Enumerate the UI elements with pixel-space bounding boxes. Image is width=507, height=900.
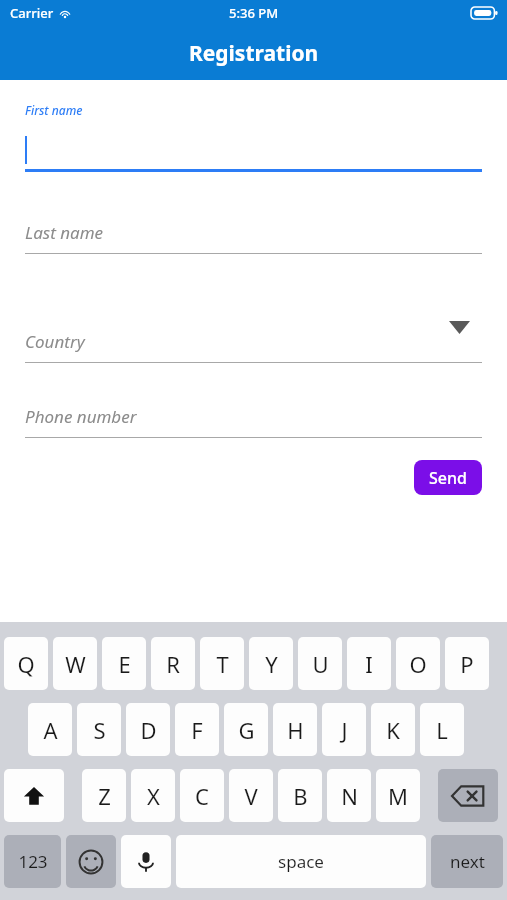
button[interactable]: N bbox=[327, 769, 371, 822]
staticText: F bbox=[191, 715, 203, 745]
staticText: Last name bbox=[25, 221, 104, 244]
button[interactable]: Voice input bbox=[121, 835, 171, 888]
button[interactable]: L bbox=[420, 703, 464, 756]
staticText: J bbox=[341, 715, 348, 745]
button[interactable]: Backspace bbox=[438, 769, 498, 822]
staticText: I bbox=[365, 649, 373, 679]
button[interactable]: Phone number bbox=[25, 394, 482, 438]
staticText: M bbox=[388, 781, 408, 811]
button[interactable]: O bbox=[396, 637, 440, 690]
button[interactable]: H bbox=[273, 703, 317, 756]
button[interactable]: X bbox=[131, 769, 175, 822]
button[interactable]: Emoji bbox=[66, 835, 116, 888]
staticText: Carrier bbox=[10, 4, 54, 22]
button[interactable]: T bbox=[200, 637, 244, 690]
button[interactable]: G bbox=[224, 703, 268, 756]
button[interactable]: Q bbox=[4, 637, 48, 690]
button[interactable]: First name bbox=[25, 102, 83, 118]
staticText: U bbox=[312, 649, 329, 679]
staticText: space bbox=[278, 850, 324, 873]
button[interactable]: E bbox=[102, 637, 146, 690]
button[interactable]: J bbox=[322, 703, 366, 756]
staticText: W bbox=[65, 649, 86, 679]
button[interactable]: W bbox=[53, 637, 97, 690]
button[interactable]: B bbox=[278, 769, 322, 822]
staticText: N bbox=[341, 781, 358, 811]
button[interactable]: Send bbox=[414, 460, 482, 495]
button[interactable]: F bbox=[175, 703, 219, 756]
button[interactable]: S bbox=[77, 703, 121, 756]
staticText: Phone number bbox=[25, 405, 137, 428]
button[interactable]: Y bbox=[249, 637, 293, 690]
staticText: K bbox=[386, 715, 400, 745]
staticText: Send bbox=[429, 467, 467, 489]
staticText: L bbox=[436, 715, 448, 745]
staticText: O bbox=[409, 649, 427, 679]
button[interactable]: Last name bbox=[25, 210, 482, 254]
staticText: Y bbox=[265, 649, 278, 679]
button[interactable] bbox=[25, 128, 482, 172]
button[interactable]: M bbox=[376, 769, 420, 822]
button[interactable]: Shift bbox=[4, 769, 64, 822]
staticText: Q bbox=[17, 649, 35, 679]
button[interactable]: P bbox=[445, 637, 489, 690]
staticText: Z bbox=[98, 781, 111, 811]
button[interactable]: A bbox=[28, 703, 72, 756]
staticText: D bbox=[140, 715, 157, 745]
button[interactable]: space bbox=[176, 835, 426, 888]
button[interactable]: Country bbox=[25, 319, 482, 363]
staticText: G bbox=[238, 715, 255, 745]
staticText: X bbox=[147, 781, 160, 811]
staticText: S bbox=[93, 715, 106, 745]
staticText: 5:36 PM bbox=[229, 4, 279, 22]
staticText: next bbox=[450, 850, 485, 873]
button[interactable]: K bbox=[371, 703, 415, 756]
staticText: Registration bbox=[189, 39, 319, 68]
staticText: C bbox=[195, 781, 209, 811]
staticText: A bbox=[43, 715, 58, 745]
staticText: P bbox=[460, 649, 474, 679]
button[interactable]: I bbox=[347, 637, 391, 690]
staticText: R bbox=[166, 649, 180, 679]
button[interactable]: C bbox=[180, 769, 224, 822]
staticText: H bbox=[287, 715, 304, 745]
button[interactable]: 123 bbox=[4, 835, 61, 888]
staticText: B bbox=[293, 781, 308, 811]
button[interactable]: Z bbox=[82, 769, 126, 822]
button[interactable]: R bbox=[151, 637, 195, 690]
staticText: E bbox=[118, 649, 131, 679]
button[interactable]: next bbox=[431, 835, 503, 888]
staticText: V bbox=[244, 781, 258, 811]
staticText: Country bbox=[25, 330, 85, 353]
staticText: T bbox=[216, 649, 229, 679]
button[interactable]: D bbox=[126, 703, 170, 756]
staticText: 123 bbox=[18, 850, 48, 873]
button[interactable]: V bbox=[229, 769, 273, 822]
button[interactable]: U bbox=[298, 637, 342, 690]
